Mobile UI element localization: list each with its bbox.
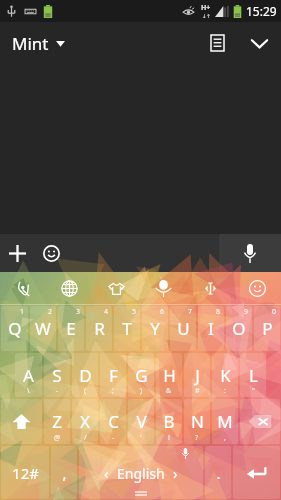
staticText: - <box>56 386 59 396</box>
staticText: / <box>84 433 87 443</box>
staticText: 9 <box>244 307 249 317</box>
staticText: 7 <box>188 307 193 317</box>
button[interactable]: I <box>198 306 224 351</box>
staticText: 1 <box>20 307 25 317</box>
staticText: & <box>166 386 172 396</box>
button[interactable]: F <box>100 353 126 397</box>
button[interactable]: A <box>15 353 42 397</box>
staticText: 8 <box>216 307 221 317</box>
button[interactable]: Emoji <box>234 272 281 304</box>
button[interactable]: C <box>100 399 126 444</box>
staticText: , <box>224 433 226 443</box>
staticText: C <box>108 410 119 433</box>
staticText: \ <box>27 386 30 396</box>
staticText: 6 <box>160 307 165 317</box>
button[interactable]: Collapse <box>237 22 281 64</box>
button[interactable]: L <box>240 353 266 397</box>
button[interactable]: G <box>128 353 154 397</box>
staticText: U <box>177 317 190 340</box>
staticText: B <box>163 410 175 433</box>
staticText: ; <box>112 386 114 396</box>
button[interactable]: Space <box>79 446 203 499</box>
staticText: O <box>232 317 246 340</box>
staticText: J <box>195 364 200 387</box>
staticText: Mint <box>12 32 49 55</box>
button[interactable]: Emoji <box>34 236 68 270</box>
button[interactable]: E <box>58 306 84 351</box>
button[interactable]: Backspace <box>240 399 280 444</box>
button[interactable]: O <box>226 306 252 351</box>
staticText: H+ <box>201 3 211 13</box>
staticText: ' <box>140 433 142 443</box>
staticText: ) <box>140 386 143 396</box>
staticText: ? <box>195 433 199 443</box>
button[interactable]: U <box>170 306 196 351</box>
staticText: G <box>135 364 148 387</box>
staticText: W <box>35 317 51 340</box>
button[interactable]: Attach <box>0 236 34 270</box>
staticText: 15:29 <box>246 3 277 19</box>
button[interactable]: D <box>72 353 98 397</box>
staticText: Y <box>150 317 160 340</box>
staticText: N <box>191 410 204 433</box>
staticText: - <box>112 433 115 443</box>
staticText: I <box>208 317 214 340</box>
staticText: X <box>80 410 90 433</box>
button[interactable]: Cursor control <box>187 272 234 304</box>
button[interactable]: Enter <box>233 446 280 499</box>
button[interactable]: K <box>212 353 238 397</box>
staticText: S <box>52 364 62 387</box>
button[interactable]: Conversation list <box>197 23 237 63</box>
staticText: ↓↑ <box>202 13 211 19</box>
staticText: V <box>136 410 147 433</box>
button[interactable]: V <box>128 399 154 444</box>
button[interactable]: R <box>86 306 112 351</box>
staticText: , <box>62 463 67 483</box>
button[interactable]: S <box>44 353 70 397</box>
staticText: ( <box>84 386 87 396</box>
staticText: : <box>224 386 226 396</box>
button[interactable]: Q <box>1 306 28 351</box>
button[interactable]: J <box>184 353 210 397</box>
staticText: 12# <box>12 463 39 483</box>
button[interactable]: N <box>184 399 210 444</box>
button[interactable]: Mint <box>0 25 77 62</box>
button[interactable]: Z <box>44 399 70 444</box>
staticText: . <box>216 463 221 483</box>
button[interactable]: Comma <box>51 446 77 499</box>
button[interactable]: H <box>156 353 182 397</box>
button[interactable]: Switch language <box>46 272 93 304</box>
staticText: 4 <box>104 307 109 317</box>
button[interactable]: Gesture typing <box>0 272 46 304</box>
button[interactable]: Theme <box>93 272 140 304</box>
button[interactable]: X <box>72 399 98 444</box>
button[interactable]: Symbols <box>1 446 49 499</box>
button[interactable]: Voice message <box>219 234 281 272</box>
staticText: L <box>249 364 258 387</box>
button[interactable]: M <box>212 399 238 444</box>
staticText: › <box>173 463 178 483</box>
staticText: D <box>79 364 92 387</box>
button[interactable]: P <box>254 306 280 351</box>
staticText: Q <box>8 317 22 340</box>
button[interactable]: Period <box>205 446 231 499</box>
staticText: 5 <box>132 307 137 317</box>
button[interactable]: Voice input <box>140 272 187 304</box>
staticText: 2 <box>48 307 53 317</box>
staticText: P <box>262 317 273 340</box>
staticText: K <box>220 364 231 387</box>
staticText: E <box>66 317 76 340</box>
button[interactable]: T <box>114 306 140 351</box>
staticText: " <box>252 386 255 396</box>
staticText: ! <box>168 433 170 443</box>
staticText: A <box>23 364 34 387</box>
button[interactable]: Y <box>142 306 168 351</box>
staticText: English <box>117 464 165 483</box>
staticText: @ <box>54 433 61 443</box>
button[interactable]: B <box>156 399 182 444</box>
button[interactable]: W <box>30 306 56 351</box>
staticText: ‹ <box>104 463 109 483</box>
button[interactable]: Shift <box>1 399 42 444</box>
staticText: T <box>122 317 132 340</box>
staticText: M <box>217 410 233 433</box>
